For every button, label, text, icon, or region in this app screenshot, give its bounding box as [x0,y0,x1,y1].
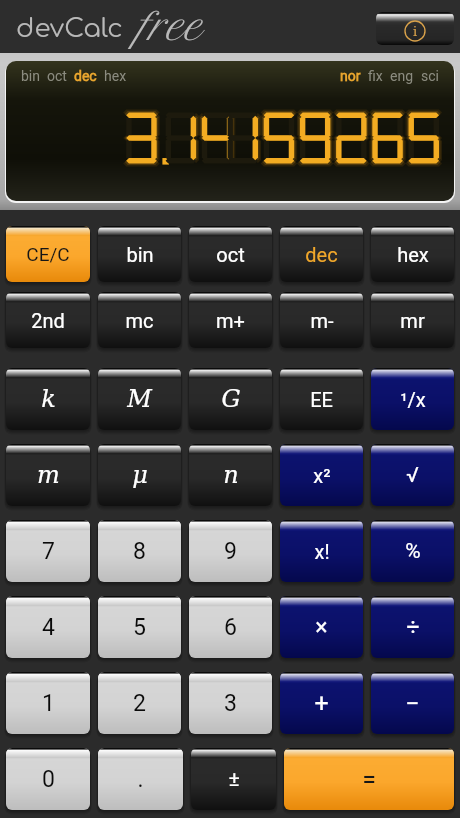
button[interactable]: bin [98,226,181,282]
button[interactable]: EE [280,368,363,430]
staticText: hex [104,68,127,84]
staticText: dec [305,243,338,266]
button[interactable]: k [6,368,90,430]
staticText: % [405,539,421,564]
button[interactable]: mr [371,292,454,348]
staticText: mc [125,309,154,332]
staticText: m [37,461,60,489]
staticText: + [314,689,329,718]
button[interactable]: oct [189,226,272,282]
button[interactable]: m- [280,292,363,348]
button[interactable]: 7 [6,520,90,582]
button[interactable]: ¹/x [371,368,454,430]
staticText: hex [397,243,429,266]
staticText: × [315,614,328,641]
staticText: fix [368,68,383,84]
staticText: = [362,765,376,794]
button[interactable]: 4 [6,596,90,658]
button[interactable]: ÷ [371,596,454,658]
staticText: ¹/x [400,388,426,411]
button[interactable]: M [98,368,181,430]
staticText: 2 [133,690,146,717]
button[interactable]: 0 [6,748,90,810]
staticText: 0 [42,766,55,793]
staticText: μ [132,461,148,489]
staticText: k [41,385,56,413]
staticText: 2nd [31,309,65,332]
button[interactable]: 2nd [6,292,90,348]
button[interactable]: √ [371,444,454,506]
button[interactable]: Info [376,12,454,45]
staticText: ± [228,767,240,792]
staticText: ÷ [406,614,420,641]
staticText: − [405,689,420,718]
staticText: 5 [133,614,146,641]
staticText: EE [310,388,333,411]
staticText: M [127,385,152,413]
staticText: devCalc [16,14,123,43]
button[interactable]: hex [371,226,454,282]
button[interactable]: 5 [98,596,181,658]
button[interactable]: x! [280,520,363,582]
staticText: sci [421,68,439,84]
button[interactable]: = [284,748,454,810]
staticText: 6 [224,614,237,641]
staticText: m+ [216,309,245,332]
staticText: n [223,461,239,489]
staticText: eng [390,68,414,84]
staticText: 4 [42,614,55,641]
staticText: 9 [224,538,237,565]
staticText: CE/C [26,243,70,265]
button[interactable]: m+ [189,292,272,348]
button[interactable]: 6 [189,596,272,658]
button[interactable]: % [371,520,454,582]
button[interactable]: × [280,596,363,658]
staticText: 1 [42,690,55,717]
staticText: free [137,5,202,49]
staticText: . [137,766,144,793]
button[interactable]: 9 [189,520,272,582]
staticText: x! [314,540,330,563]
button[interactable]: . [98,748,183,810]
button[interactable]: CE/C [6,226,90,282]
button[interactable]: + [280,672,363,734]
button[interactable]: 8 [98,520,181,582]
staticText: 3 [224,690,237,717]
button[interactable]: 3 [189,672,272,734]
button[interactable]: m [6,444,90,506]
staticText: oct [216,243,245,266]
button[interactable]: 1 [6,672,90,734]
button[interactable]: 2 [98,672,181,734]
staticText: bin [126,243,154,266]
staticText: G [221,385,241,413]
button[interactable]: − [371,672,454,734]
button[interactable]: mc [98,292,181,348]
staticText: nor [340,68,361,84]
staticText: mr [400,309,425,332]
button[interactable]: n [189,444,272,506]
button[interactable]: μ [98,444,181,506]
staticText: bin [21,68,40,84]
staticText: x² [313,464,331,487]
button[interactable]: dec [280,226,363,282]
staticText: oct [47,68,67,84]
button[interactable]: x² [280,444,363,506]
staticText: i [413,24,418,39]
staticText: m- [310,309,334,332]
staticText: 7 [42,538,55,565]
staticText: dec [74,68,97,84]
button[interactable]: ± [191,748,276,810]
staticText: √ [406,463,419,488]
button[interactable]: G [189,368,272,430]
staticText: 8 [133,538,146,565]
